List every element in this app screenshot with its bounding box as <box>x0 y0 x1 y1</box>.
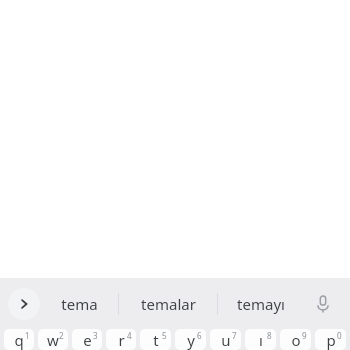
staticText: 4 <box>127 330 132 341</box>
button[interactable]: 4 <box>106 329 136 350</box>
staticText: 3 <box>93 330 98 341</box>
button[interactable]: 0 <box>315 329 346 350</box>
staticText: temayı <box>237 294 285 314</box>
staticText: 5 <box>162 330 167 341</box>
staticText: u <box>221 330 231 350</box>
button[interactable]: 1 <box>4 329 34 350</box>
staticText: w <box>47 330 59 350</box>
staticText: 6 <box>197 330 202 341</box>
staticText: 2 <box>59 330 64 341</box>
staticText: e <box>83 330 92 350</box>
staticText: temalar <box>141 294 196 314</box>
staticText: 1 <box>25 330 30 341</box>
staticText: 0 <box>337 330 342 341</box>
staticText: o <box>291 330 301 350</box>
staticText: tema <box>61 294 98 314</box>
button[interactable]: 5 <box>140 329 171 350</box>
button[interactable]: tema <box>40 278 118 329</box>
button[interactable]: 9 <box>280 329 311 350</box>
staticText: r <box>118 330 125 350</box>
staticText: q <box>14 330 24 350</box>
button[interactable]: temalar <box>119 278 217 329</box>
button[interactable]: Voice input <box>306 287 340 321</box>
button[interactable]: 3 <box>72 329 102 350</box>
staticText: 7 <box>232 330 237 341</box>
staticText: p <box>326 330 336 350</box>
staticText: t <box>153 330 159 350</box>
staticText: 8 <box>267 330 272 341</box>
staticText: y <box>187 330 195 350</box>
staticText: 9 <box>302 330 307 341</box>
button[interactable]: Expand suggestions <box>8 288 40 320</box>
button[interactable]: 8 <box>245 329 276 350</box>
button[interactable]: temayı <box>218 278 304 329</box>
staticText: ı <box>259 330 263 350</box>
button[interactable]: 2 <box>38 329 68 350</box>
button[interactable]: 7 <box>210 329 241 350</box>
button[interactable]: 6 <box>175 329 206 350</box>
